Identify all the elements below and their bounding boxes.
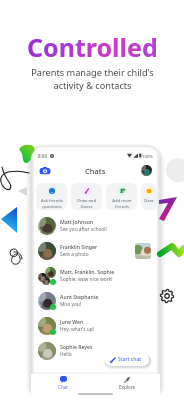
staticText: Chat: [58, 384, 68, 390]
button[interactable]: Chat: [31, 375, 95, 391]
button[interactable]: Franklin Singer: [34, 238, 157, 263]
staticText: Hello: [60, 351, 72, 358]
button[interactable]: Dare: [141, 183, 157, 210]
button[interactable]: Camera: [39, 165, 51, 177]
button[interactable]: June Wen: [34, 313, 157, 338]
button[interactable]: Explore: [95, 375, 160, 391]
staticText: See you after school!: [60, 226, 107, 233]
staticText: Sophie Reyes: [60, 343, 93, 350]
button[interactable]: Aunt Stephanie: [34, 288, 157, 313]
button[interactable]: Matt, Franklin, Sophie: [34, 263, 157, 288]
staticText: Controlled: [27, 30, 158, 64]
staticText: 100%: [142, 153, 153, 159]
button[interactable]: Profile: [141, 165, 152, 176]
staticText: Start chat: [118, 356, 142, 363]
staticText: Draw and Guess: [77, 198, 96, 210]
staticText: June Wen: [60, 318, 84, 325]
staticText: 8:06: [38, 153, 48, 159]
button[interactable]: Draw and Guess: [71, 183, 102, 210]
staticText: Miss you!: [60, 301, 82, 308]
staticText: Ask friends questions: [41, 198, 63, 210]
button[interactable]: Start chat: [105, 353, 149, 366]
staticText: Hey, what's up!: [60, 326, 94, 333]
staticText: Add more friends: [112, 198, 132, 210]
staticText: Sent a photo: [60, 251, 89, 258]
staticText: Chats: [85, 166, 106, 176]
button[interactable]: Ask friends questions: [36, 183, 67, 210]
staticText: Sophie: wow nice work!: [60, 276, 113, 283]
staticText: Franklin Singer: [60, 243, 98, 250]
staticText: Explore: [119, 384, 136, 390]
staticText: Matt Johnson: [60, 218, 94, 225]
button[interactable]: Matt Johnson: [34, 213, 157, 238]
button[interactable]: Sophie Reyes: [34, 338, 157, 363]
staticText: Matt, Franklin, Sophie: [60, 268, 115, 275]
staticText: Parents manage their child's activity & …: [31, 66, 154, 92]
button[interactable]: Add more friends: [106, 183, 137, 210]
staticText: Dare: [144, 198, 154, 204]
staticText: Aunt Stephanie: [60, 293, 99, 300]
